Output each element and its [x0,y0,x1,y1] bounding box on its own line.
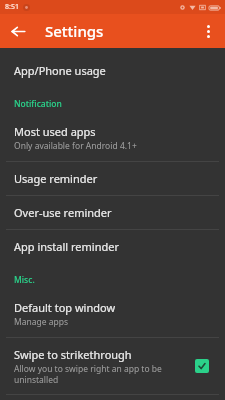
staticText: Over-use reminder [14,205,112,220]
staticText: Misc. [14,274,35,286]
staticText: Usage reminder [14,171,98,186]
button[interactable]: Over-use reminder [0,196,225,229]
button[interactable]: Toggle Swipe to strikethrough [191,355,213,377]
button[interactable]: Swipe to strikethrough [0,338,225,394]
staticText: Settings [45,21,104,41]
staticText: Swipe to strikethrough [14,347,132,362]
staticText: Allow you to swipe right an app to be un… [14,363,162,385]
button[interactable]: Default top window [0,291,225,337]
staticText: App/Phone usage [14,63,106,78]
staticText: Manage apps [14,316,69,328]
button[interactable]: Usage reminder [0,162,225,195]
staticText: Notification [14,98,62,110]
button[interactable]: App install reminder [0,230,225,263]
button[interactable]: Back [4,17,32,45]
staticText: Only available for Android 4.1+ [14,140,137,152]
staticText: Most used apps [14,124,96,139]
staticText: Default top window [14,300,116,315]
button[interactable]: More options [194,17,222,45]
button[interactable]: App/Phone usage [0,54,225,87]
button[interactable]: Most used apps [0,115,225,161]
staticText: 8:51 [5,2,19,12]
staticText: App install reminder [14,239,119,254]
